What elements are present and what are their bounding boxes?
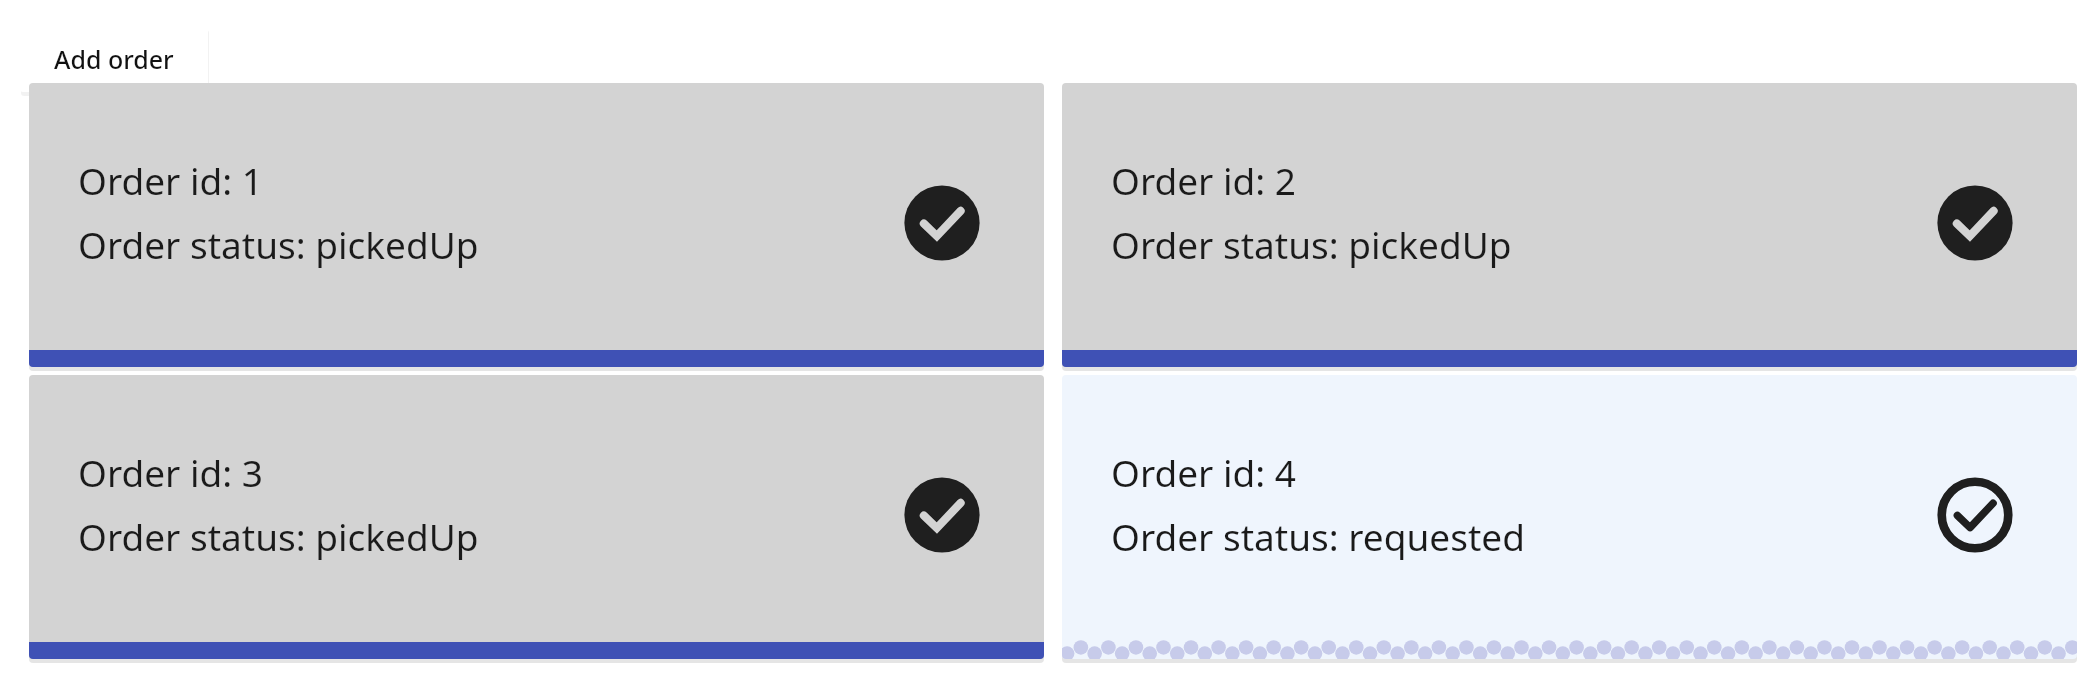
button[interactable]: Picked up <box>902 183 982 263</box>
staticText: Add order <box>54 42 174 76</box>
staticText: Order status: requested <box>1111 511 1525 561</box>
button[interactable]: Order id: 4 <box>1062 375 2077 659</box>
button[interactable]: Picked up <box>1935 183 2015 263</box>
staticText: Order id: 1 <box>78 155 263 205</box>
staticText: Order id: 4 <box>1111 447 1296 497</box>
button[interactable]: Order id: 3 <box>29 375 1044 659</box>
staticText: Order status: pickedUp <box>78 511 479 561</box>
button[interactable]: Add order <box>20 26 208 92</box>
button[interactable]: Order id: 2 <box>1062 83 2077 367</box>
button[interactable]: Order id: 1 <box>29 83 1044 367</box>
staticText: Order id: 2 <box>1111 155 1296 205</box>
staticText: Order status: pickedUp <box>78 219 479 269</box>
button[interactable]: Picked up <box>902 475 982 555</box>
staticText: Order id: 3 <box>78 447 263 497</box>
button[interactable]: Mark picked up <box>1935 475 2015 555</box>
staticText: Order status: pickedUp <box>1111 219 1512 269</box>
